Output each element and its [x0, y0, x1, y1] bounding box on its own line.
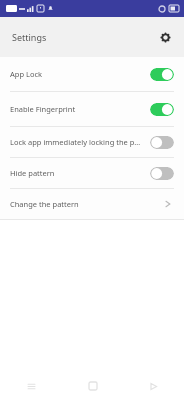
button[interactable]: Settings — [155, 27, 175, 47]
staticText: Settings — [12, 31, 47, 43]
button[interactable]: Hide pattern — [0, 158, 184, 188]
staticText: App Lock — [10, 69, 144, 79]
staticText: Enable Fingerprint — [10, 104, 144, 114]
button[interactable]: Lock app immediately locking the phone — [0, 127, 184, 157]
button[interactable]: Home — [62, 373, 123, 399]
staticText: Lock app immediately locking the phone — [10, 137, 144, 147]
button[interactable]: On — [150, 103, 174, 116]
staticText: Hide pattern — [10, 168, 144, 178]
button[interactable]: Off — [150, 136, 174, 149]
button[interactable]: Change the pattern — [0, 189, 184, 219]
button[interactable]: App Lock — [0, 57, 184, 91]
staticText: Change the pattern — [10, 199, 164, 209]
button[interactable]: Enable Fingerprint — [0, 92, 184, 126]
button[interactable]: Off — [150, 167, 174, 180]
button[interactable]: On — [150, 68, 174, 81]
